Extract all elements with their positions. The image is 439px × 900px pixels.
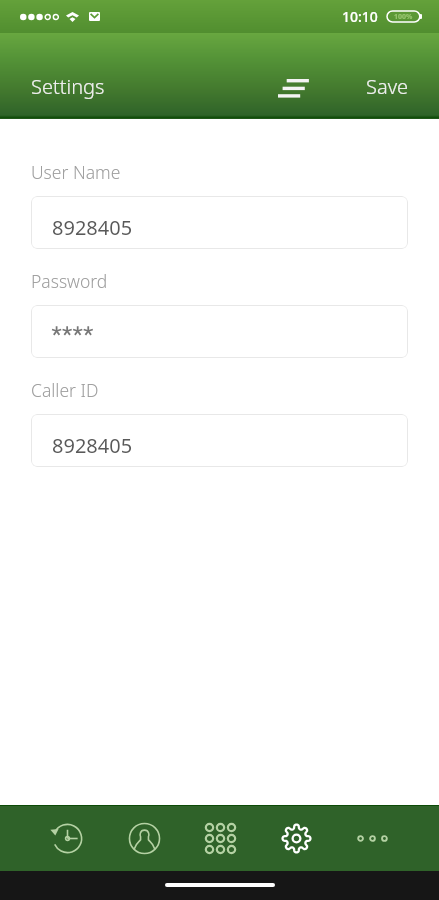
staticText: Settings [31,73,105,100]
button[interactable]: Sort [269,64,317,112]
button[interactable]: Dialpad [182,805,258,871]
button[interactable]: Settings [18,63,118,110]
button[interactable]: Settings [258,805,334,871]
staticText: Save [366,73,409,100]
button[interactable]: Contacts [106,805,182,871]
staticText: 8928405 [52,432,133,459]
staticText: 100% [394,12,413,22]
button[interactable]: 8928405 [31,196,408,249]
staticText: 10:10 [342,7,378,26]
staticText: Password [31,269,108,293]
staticText: Caller ID [31,378,99,402]
button[interactable]: Save [353,63,422,110]
button[interactable]: 8928405 [31,414,408,467]
button[interactable]: More [334,805,410,871]
button[interactable] [31,305,408,358]
button[interactable]: Recent calls [29,805,106,871]
staticText: 8928405 [52,214,133,241]
staticText: User Name [31,160,121,184]
